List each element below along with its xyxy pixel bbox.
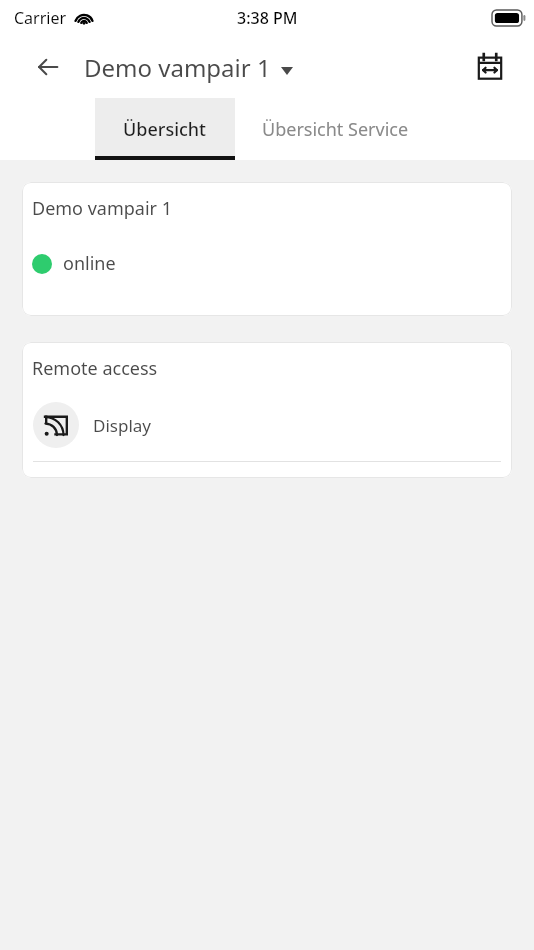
staticText: 3:38 PM — [237, 7, 298, 29]
staticText: online — [63, 251, 116, 276]
button[interactable]: Demo vampair 1 — [22, 182, 512, 316]
button[interactable]: Demo vampair 1 — [84, 51, 293, 84]
button[interactable]: Übersicht Service — [235, 98, 435, 160]
staticText: Demo vampair 1 — [32, 196, 172, 221]
staticText: Demo vampair 1 — [84, 51, 271, 84]
staticText: Remote access — [32, 356, 158, 381]
button[interactable]: Back — [26, 45, 70, 89]
button[interactable]: Display — [22, 402, 512, 448]
button[interactable]: Calendar range — [468, 45, 512, 89]
button[interactable]: Übersicht — [95, 98, 235, 160]
staticText: Carrier — [14, 7, 67, 29]
staticText: Übersicht Service — [262, 117, 409, 142]
staticText: Display — [93, 414, 151, 437]
staticText: Übersicht — [123, 117, 207, 142]
